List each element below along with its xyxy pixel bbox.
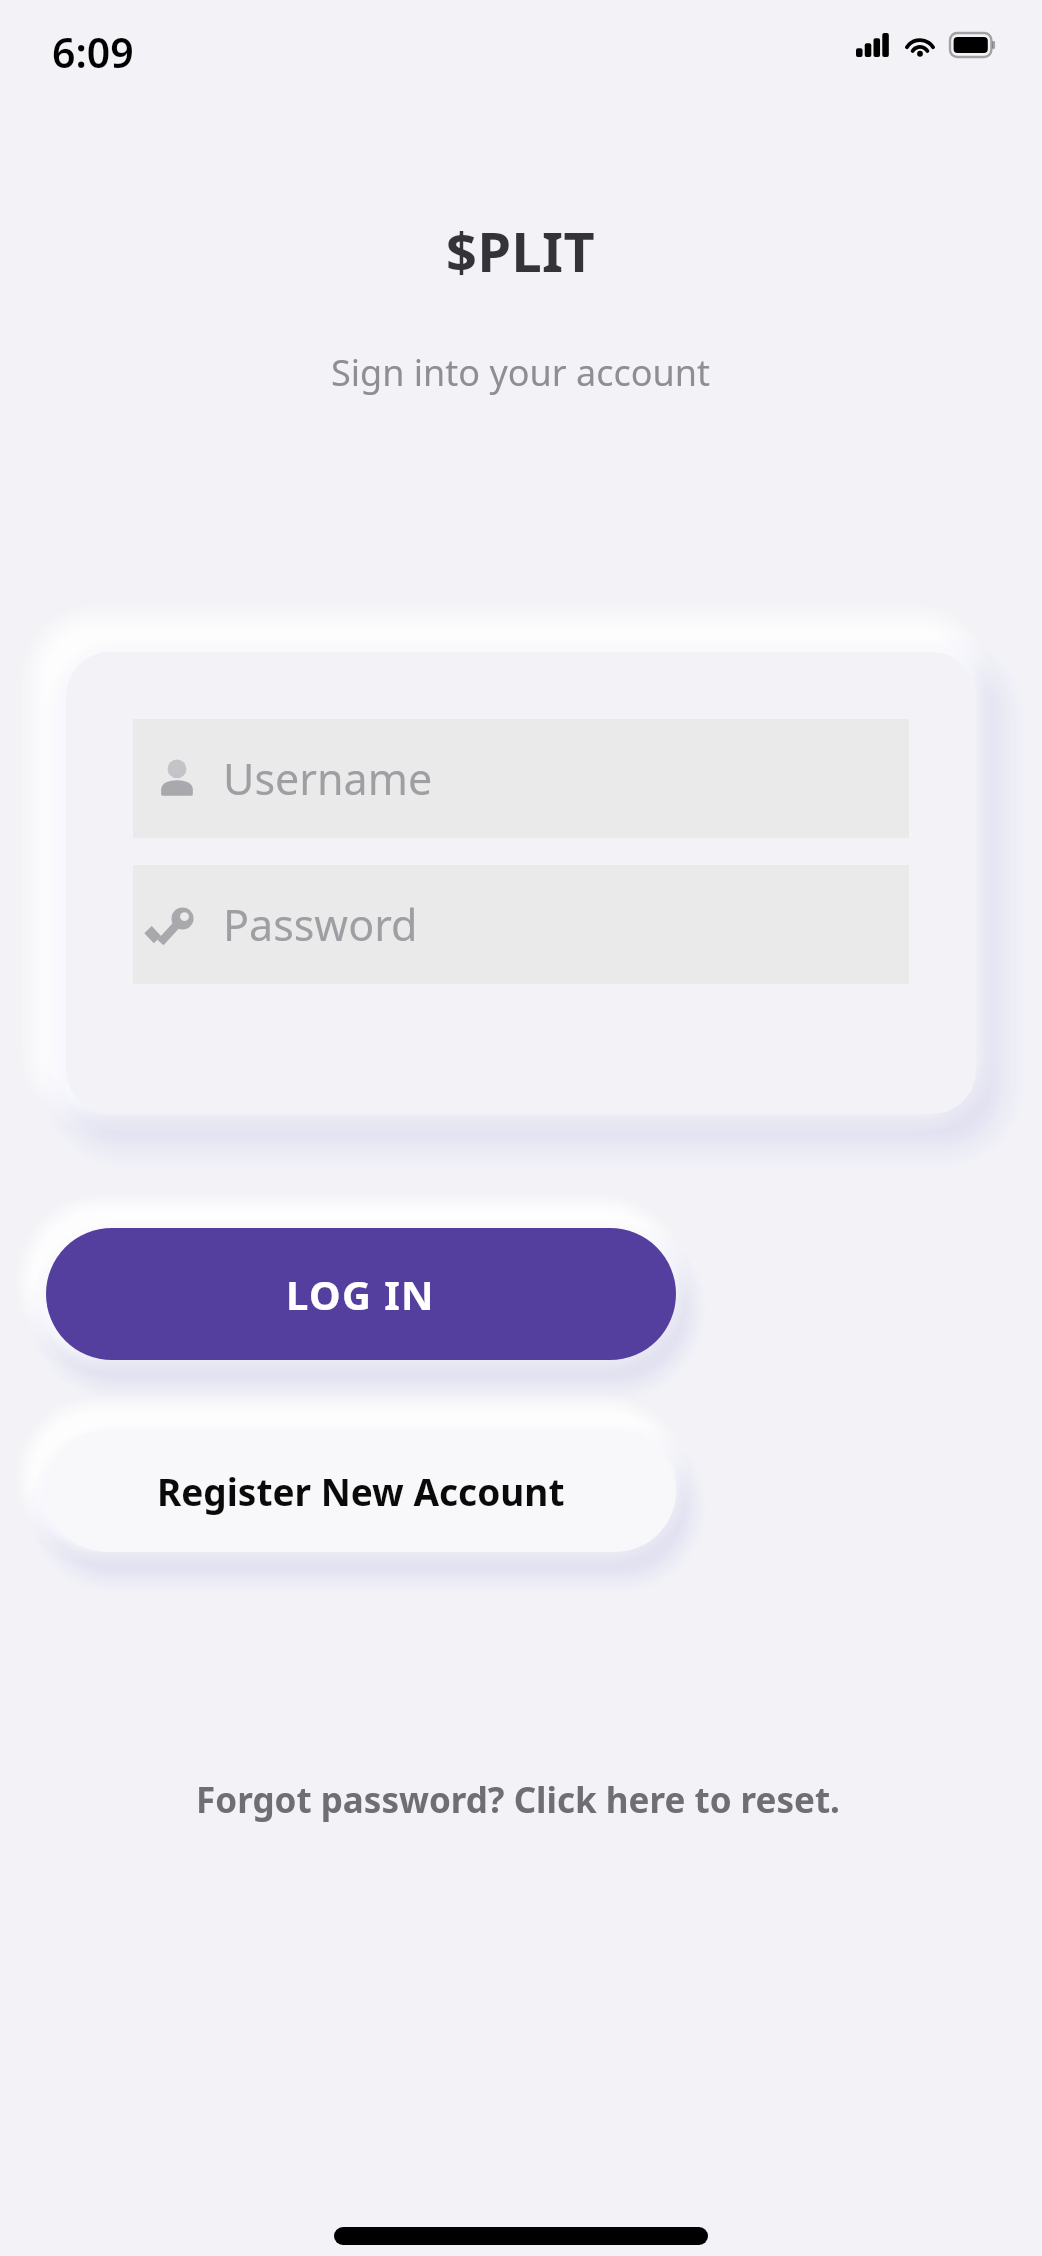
button[interactable]: Username <box>133 719 909 838</box>
button[interactable]: Password <box>133 865 909 984</box>
button[interactable]: Forgot password? Click here to reset. <box>186 1768 850 1832</box>
staticText: 6:09 <box>52 24 134 80</box>
staticText: $PLIT <box>446 214 596 288</box>
staticText: Forgot password? Click here to reset. <box>196 1776 840 1824</box>
button[interactable]: Register New Account <box>46 1430 676 1552</box>
button[interactable]: LOG IN <box>46 1228 676 1360</box>
staticText: Sign into your account <box>331 348 711 397</box>
staticText: Password <box>223 895 418 954</box>
other: Password <box>154 902 200 948</box>
staticText: Register New Account <box>157 1466 565 1516</box>
staticText: LOG IN <box>286 1267 436 1321</box>
other: Username <box>154 756 200 802</box>
staticText: Username <box>223 749 433 808</box>
